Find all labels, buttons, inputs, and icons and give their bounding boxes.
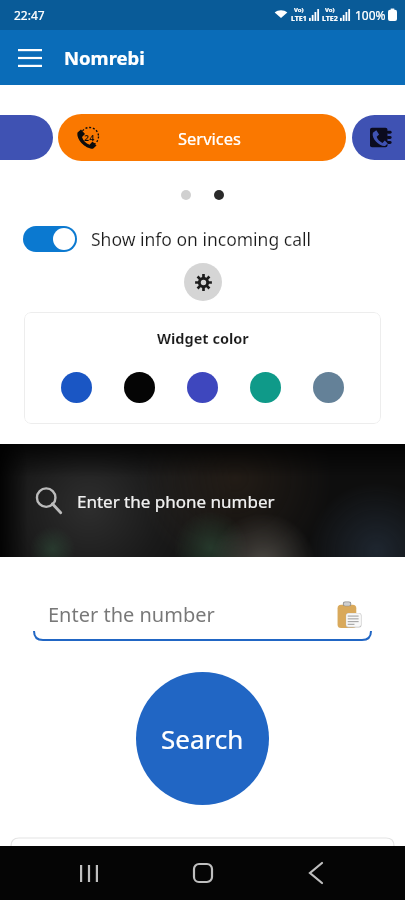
staticText: LTE2 <box>322 14 338 24</box>
button[interactable]: Recent apps <box>65 849 113 897</box>
staticText: Search <box>161 721 244 756</box>
button[interactable]: Back <box>292 849 340 897</box>
button[interactable]: Previous card <box>0 115 53 160</box>
staticText: Vo) <box>294 6 304 14</box>
button[interactable]: Phone book <box>352 115 405 160</box>
staticText: 22:47 <box>14 7 45 23</box>
button[interactable]: Color swatch <box>124 372 155 403</box>
button[interactable]: Color swatch <box>61 372 92 403</box>
staticText: Services <box>178 127 241 149</box>
staticText: 100% <box>355 7 386 23</box>
button[interactable]: Enter the number <box>34 593 371 641</box>
staticText: Nomrebi <box>64 45 145 70</box>
staticText: Vo) <box>325 6 335 14</box>
staticText: Enter the phone number <box>77 490 275 513</box>
staticText: 24 <box>84 131 95 143</box>
button[interactable]: Search <box>136 672 269 805</box>
button[interactable]: Menu <box>10 38 50 78</box>
button[interactable]: Home <box>179 849 227 897</box>
button[interactable]: 24 <box>58 114 346 161</box>
button[interactable]: Show info on incoming call toggle <box>23 226 77 252</box>
button[interactable]: Color swatch <box>250 372 281 403</box>
button[interactable]: Color swatch <box>313 372 344 403</box>
button[interactable]: Color swatch <box>187 372 218 403</box>
button[interactable]: Enter the phone number <box>0 444 405 557</box>
staticText: Enter the number <box>48 601 215 628</box>
staticText: LTE1 <box>291 14 307 24</box>
staticText: Widget color <box>157 328 249 348</box>
staticText: Show info on incoming call <box>91 227 311 251</box>
button[interactable]: Settings <box>184 263 222 301</box>
